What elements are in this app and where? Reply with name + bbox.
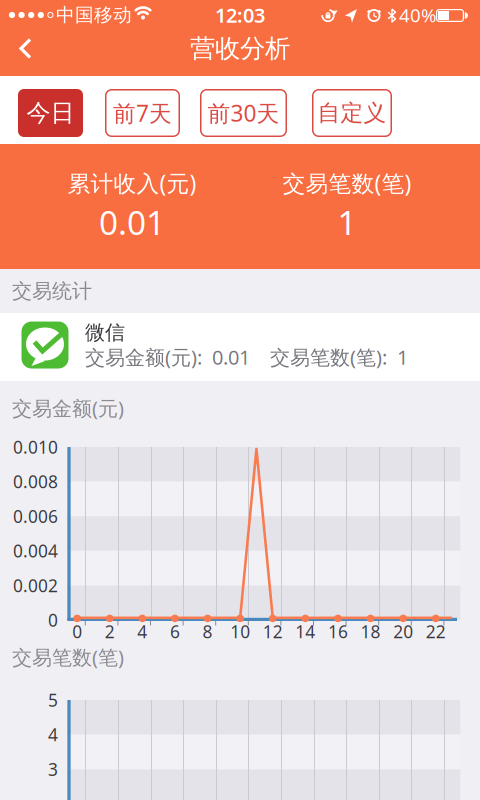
staticText: 0.008 [13,470,58,493]
staticText: 中国移动 [56,3,132,26]
staticText: 10 [230,620,250,643]
staticText: 营收分析 [190,33,290,64]
staticText: 1 [337,200,356,244]
staticText: 前30天 [207,98,279,128]
staticText: 4 [137,620,147,643]
staticText: 微信 [85,320,125,345]
staticText: 0.006 [13,505,58,528]
button[interactable]: 今日 [18,89,83,137]
staticText: 0.002 [13,574,58,597]
staticText: 5 [48,688,58,711]
staticText: 14 [295,620,315,643]
staticText: 0 [48,608,58,631]
staticText: 22 [426,620,446,643]
staticText: 8 [203,620,213,643]
staticText: 交易笔数(笔): 1 [270,344,408,370]
button[interactable]: 前30天 [200,89,287,137]
staticText: 交易金额(元) [12,395,124,421]
button[interactable]: 前7天 [105,89,180,137]
staticText: 交易笔数(笔) [12,644,124,670]
staticText: 0.010 [13,435,58,458]
staticText: 0.01 [99,200,165,244]
staticText: 4 [48,723,58,746]
staticText: 累计收入(元) [67,168,196,198]
staticText: 前7天 [113,98,172,128]
button[interactable]: 微信 [0,313,480,381]
staticText: 0.004 [13,539,58,562]
staticText: 交易金额(元): 0.01 [85,344,250,370]
staticText: 今日 [26,98,74,128]
staticText: 18 [361,620,381,643]
staticText: 交易统计 [12,279,92,303]
button[interactable] [0,34,54,62]
staticText: 交易笔数(笔) [282,168,411,198]
staticText: 12:03 [215,2,265,28]
button[interactable]: 自定义 [312,89,392,137]
staticText: 自定义 [317,99,386,127]
staticText: 40% [399,3,437,27]
staticText: 12 [263,620,283,643]
staticText: 2 [105,620,115,643]
staticText: 20 [393,620,413,643]
staticText: 16 [328,620,348,643]
staticText: 6 [170,620,180,643]
staticText: 3 [48,758,58,781]
staticText: 0 [72,620,82,643]
